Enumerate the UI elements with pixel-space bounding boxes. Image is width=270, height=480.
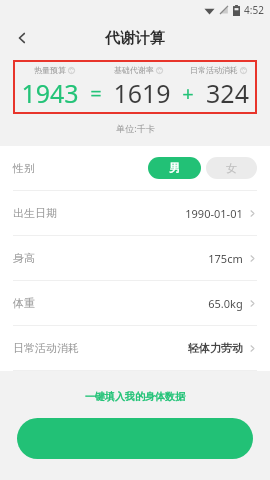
staticText: 65.0kg (208, 296, 243, 311)
staticText: = (90, 80, 102, 107)
staticText: 体重 (13, 296, 35, 310)
staticText: 基础代谢率 (114, 65, 154, 75)
button[interactable]: 日常活动消耗 (0, 326, 270, 370)
staticText: 出生日期 (13, 206, 57, 220)
button[interactable]: 一键填入我的身体数据 (77, 387, 193, 406)
button[interactable]: Back (8, 24, 36, 52)
staticText: 1619 (113, 76, 171, 110)
staticText: 代谢计算 (105, 29, 165, 48)
button[interactable]: 女 (206, 157, 257, 179)
staticText: + (182, 80, 194, 107)
staticText: 324 (206, 76, 249, 110)
staticText: 4:52 (244, 3, 264, 17)
button[interactable]: 身高 (0, 236, 270, 280)
staticText: 一键填入我的身体数据 (85, 390, 185, 403)
staticText: 女 (226, 161, 237, 175)
staticText: 1990-01-01 (185, 206, 243, 221)
button[interactable]: 男 (148, 157, 201, 179)
staticText: 单位:千卡 (116, 122, 155, 134)
staticText: 身高 (13, 251, 35, 265)
staticText: 日常活动消耗 (190, 65, 238, 75)
staticText: 轻体力劳动 (188, 341, 243, 355)
button[interactable]: 出生日期 (0, 191, 270, 235)
staticText: 1943 (21, 76, 79, 110)
staticText: 175cm (208, 251, 243, 266)
button[interactable]: 保存 (17, 418, 253, 459)
staticText: 日常活动消耗 (13, 341, 79, 355)
staticText: 热量预算 (34, 65, 66, 75)
staticText: 性别 (13, 161, 35, 175)
staticText: 男 (169, 161, 180, 175)
button[interactable]: 体重 (0, 281, 270, 325)
